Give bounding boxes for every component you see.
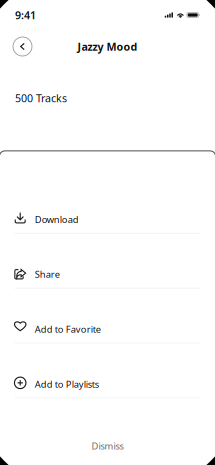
button[interactable]: Add to Playlists (0, 344, 215, 398)
staticText: Share (35, 268, 60, 280)
staticText: Download (35, 213, 79, 226)
staticText: Dismiss (91, 440, 123, 452)
button[interactable]: Add to Favorite (0, 289, 215, 344)
staticText: Add to Playlists (35, 378, 99, 390)
staticText: 500 Tracks (15, 91, 67, 105)
button[interactable]: Download (0, 179, 215, 234)
staticText: Add to Favorite (35, 323, 101, 335)
staticText: 9:41 (15, 8, 36, 22)
button[interactable]: Share (0, 234, 215, 289)
staticText: Jazzy Mood (77, 39, 137, 54)
button[interactable]: Dismiss (0, 399, 215, 465)
button[interactable]: Back (13, 37, 32, 56)
